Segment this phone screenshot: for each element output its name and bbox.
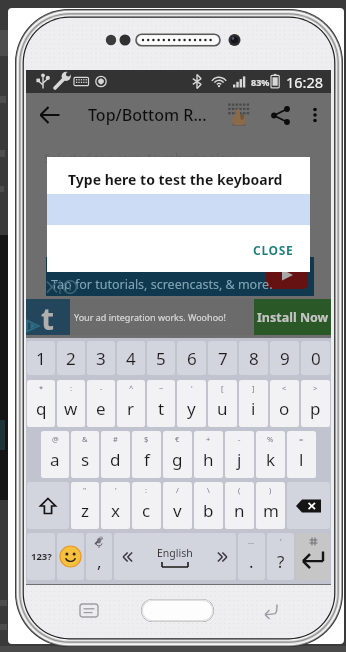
- button[interactable]: [296, 533, 330, 580]
- button[interactable]: ^: [117, 380, 145, 427]
- staticText: d: [110, 448, 121, 471]
- staticText: 9: [280, 347, 290, 370]
- button[interactable]: ...: [238, 533, 265, 580]
- staticText: r: [127, 397, 135, 420]
- staticText: ...: [248, 536, 255, 546]
- staticText: g: [172, 448, 183, 471]
- staticText: o: [279, 397, 290, 420]
- staticText: 123?: [31, 550, 52, 563]
- button[interactable]: ]: [239, 380, 268, 427]
- button[interactable]: [27, 482, 69, 529]
- staticText: k: [266, 448, 276, 471]
- button[interactable]: (: [225, 482, 254, 529]
- button[interactable]: [287, 482, 330, 529]
- button[interactable]: >: [301, 380, 330, 427]
- staticText: a: [50, 448, 60, 471]
- button[interactable]: Back: [256, 598, 282, 622]
- staticText: +: [206, 434, 211, 444]
- staticText: *: [39, 383, 44, 393]
- button[interactable]: Home: [141, 599, 214, 622]
- button[interactable]: Navigate up: [26, 93, 74, 137]
- staticText: >: [313, 383, 318, 393]
- staticText: ): [269, 485, 272, 495]
- staticText: Selected top row: Numberbar low: [44, 150, 236, 166]
- button[interactable]: :: [57, 380, 85, 427]
- staticText: l: [299, 448, 304, 471]
- button[interactable]: $: [132, 431, 161, 478]
- button[interactable]: \: [194, 482, 223, 529]
- button[interactable]: 3: [87, 341, 115, 375]
- button[interactable]: [57, 533, 84, 580]
- button[interactable]: Install Now: [254, 299, 331, 335]
- staticText: %: [267, 434, 274, 444]
- button[interactable]: ': [101, 482, 130, 529]
- button[interactable]: @: [41, 431, 69, 478]
- staticText: 5: [156, 347, 166, 370]
- button[interactable]: €: [163, 431, 192, 478]
- button[interactable]: /: [163, 482, 192, 529]
- button[interactable]: -: [225, 431, 254, 478]
- staticText: :: [145, 485, 148, 495]
- button[interactable]: Keyboard: [217, 93, 261, 137]
- button[interactable]: -: [87, 380, 115, 427]
- button[interactable]: <: [270, 380, 299, 427]
- staticText: 2: [66, 347, 76, 370]
- button[interactable]: +: [194, 431, 223, 478]
- staticText: y: [187, 397, 196, 420]
- button[interactable]: English: [114, 533, 236, 580]
- button[interactable]: ': [177, 380, 206, 427]
- staticText: f: [144, 448, 150, 471]
- staticText: w: [64, 397, 78, 420]
- button[interactable]: #: [101, 431, 130, 478]
- button[interactable]: ): [256, 482, 285, 529]
- staticText: Install Now: [257, 309, 329, 326]
- button[interactable]: 5: [147, 341, 175, 375]
- button[interactable]: 6: [177, 341, 206, 375]
- button[interactable]: [: [208, 380, 237, 427]
- button[interactable]: CLOSE: [253, 242, 310, 272]
- button[interactable]: Menu: [76, 598, 102, 622]
- button[interactable]: 123?: [27, 533, 55, 580]
- staticText: ]: [252, 383, 255, 393]
- staticText: m: [263, 499, 279, 522]
- button[interactable]: ~: [147, 380, 175, 427]
- button[interactable]: *: [27, 380, 55, 427]
- staticText: 1: [36, 347, 46, 370]
- staticText: e: [96, 397, 106, 420]
- button[interactable]: 1: [27, 341, 55, 375]
- staticText: €: [175, 434, 180, 444]
- button[interactable]: =: [287, 431, 316, 478]
- button[interactable]: Share: [261, 93, 299, 137]
- staticText: Type here to test the keyboard: [68, 170, 283, 189]
- staticText: -: [238, 434, 241, 444]
- button[interactable]: Play video: [46, 257, 314, 296]
- button[interactable]: &: [71, 431, 99, 478]
- staticText: ^: [129, 383, 134, 393]
- button[interactable]: ": [71, 482, 99, 529]
- button[interactable]: 7: [208, 341, 237, 375]
- staticText: -: [100, 383, 103, 393]
- button[interactable]: 2: [57, 341, 85, 375]
- staticText: j: [237, 448, 242, 471]
- button[interactable]: 4: [117, 341, 145, 375]
- staticText: 3: [96, 347, 106, 370]
- staticText: Tap for tutorials, screencasts, & more.: [51, 276, 273, 293]
- button[interactable]: 9: [270, 341, 299, 375]
- staticText: [: [221, 383, 224, 393]
- staticText: 4: [126, 347, 136, 370]
- staticText: 8: [249, 347, 259, 370]
- staticText: Your ad integration works. Woohoo!: [74, 311, 226, 323]
- button[interactable]: %: [256, 431, 285, 478]
- staticText: n: [234, 499, 245, 522]
- button[interactable]: 0: [301, 341, 330, 375]
- staticText: 83%: [251, 76, 270, 88]
- staticText: /: [176, 485, 179, 495]
- staticText: @: [52, 434, 59, 444]
- staticText: 7: [218, 347, 228, 370]
- button[interactable]: 🎤: [86, 533, 112, 580]
- staticText: u: [217, 397, 228, 420]
- button[interactable]: More options: [299, 93, 331, 137]
- button[interactable]: ': [267, 533, 294, 580]
- button[interactable]: :: [132, 482, 161, 529]
- button[interactable]: 8: [239, 341, 268, 375]
